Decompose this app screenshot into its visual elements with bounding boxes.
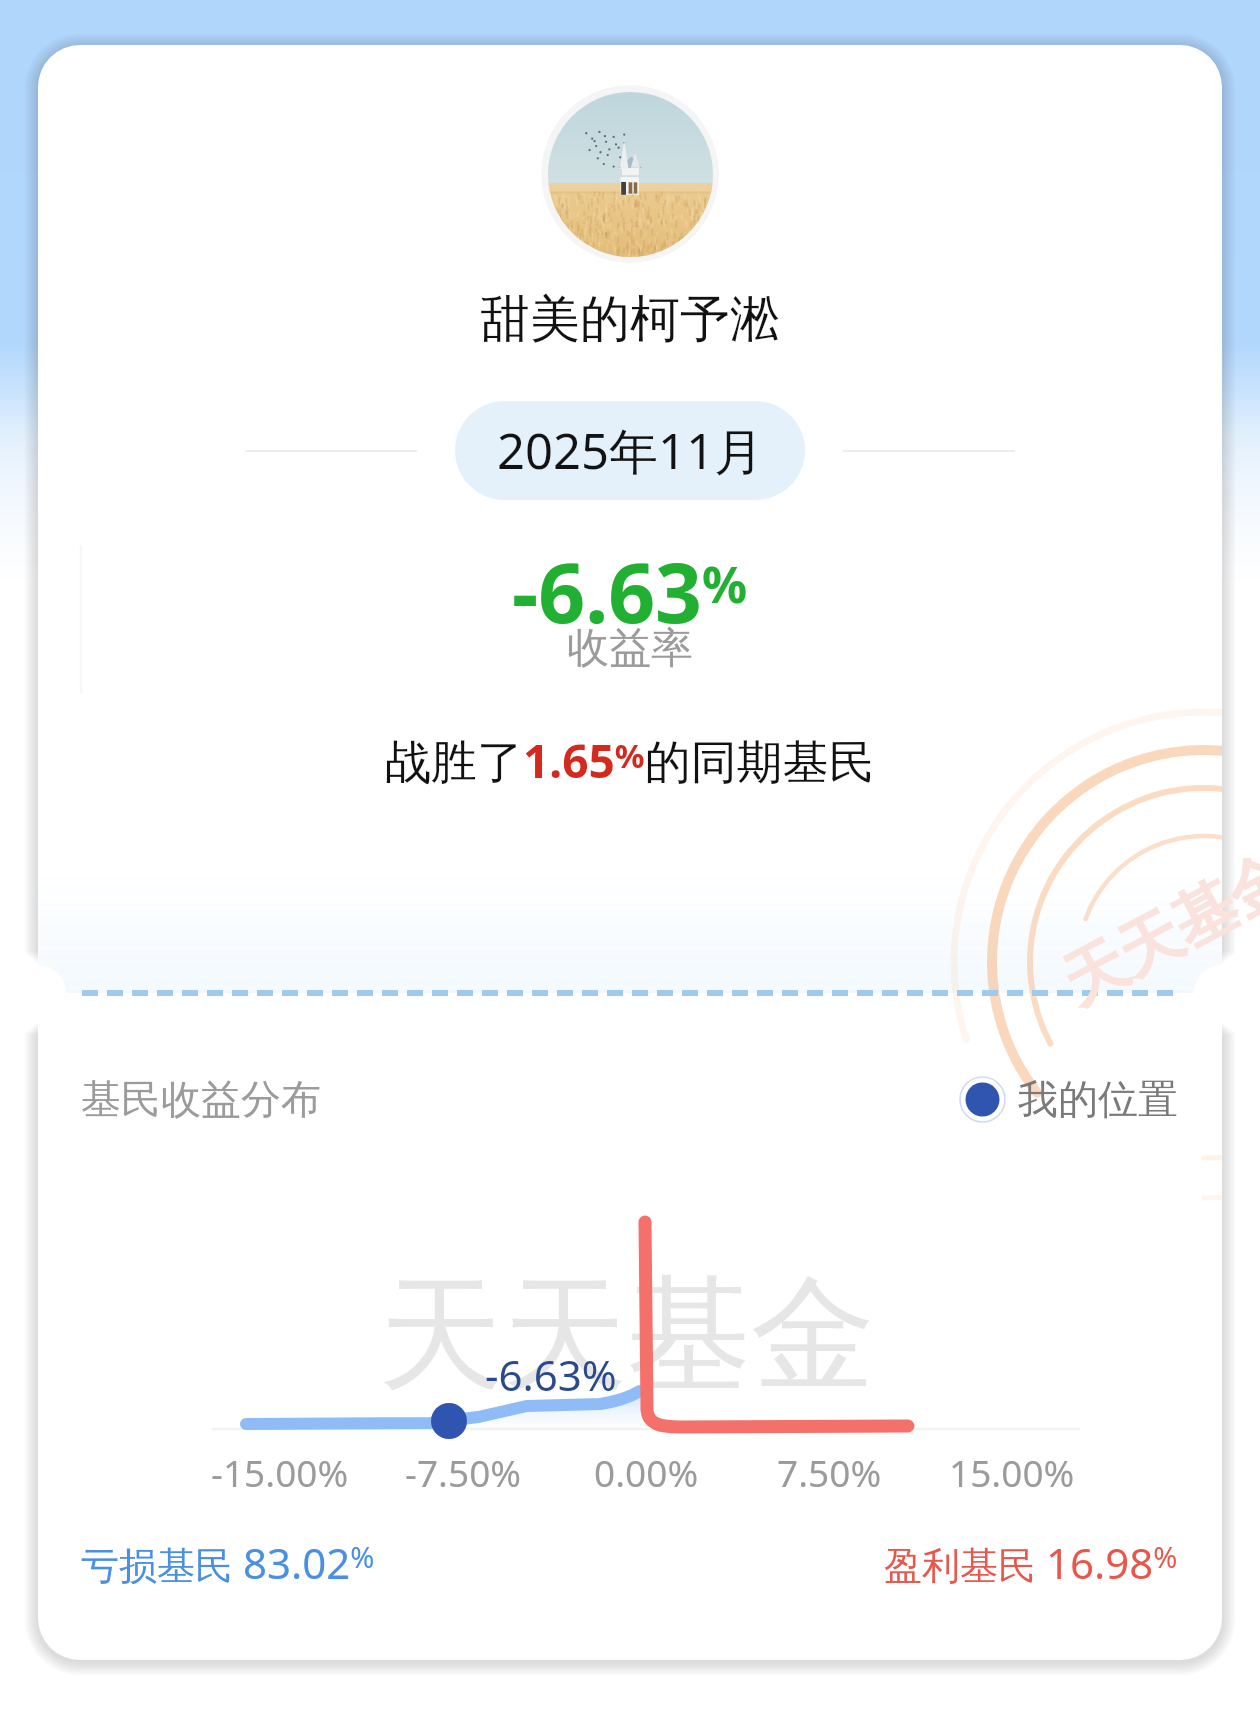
staticText: 2025年11月 — [497, 417, 764, 484]
staticText: -6.63% — [512, 535, 748, 647]
staticText: -7.50% — [405, 1447, 522, 1497]
staticText: 战胜了1.65%的同期基民 — [385, 729, 875, 792]
staticText: 0.00% — [594, 1447, 699, 1497]
button[interactable]: 甜美的柯予淞 — [480, 288, 780, 351]
staticText: 盈利基民 16.98% — [884, 1534, 1178, 1591]
staticText: 亏损基民 83.02% — [81, 1534, 375, 1591]
staticText: 天天基金 — [379, 1258, 875, 1414]
staticText: 7.50% — [777, 1447, 882, 1497]
button[interactable]: 我的位置 — [959, 1074, 1178, 1124]
staticText: -6.63% — [485, 1346, 617, 1403]
button[interactable]: 用户头像 — [541, 85, 719, 263]
staticText: 天天基金 — [1049, 836, 1260, 1022]
button[interactable]: 亏损基民 83.02% — [81, 1534, 375, 1591]
staticText: 15.00% — [949, 1447, 1075, 1497]
button[interactable]: -6.63% — [512, 535, 748, 647]
staticText: 收益率 — [567, 622, 693, 675]
button[interactable]: 盈利基民 16.98% — [884, 1534, 1178, 1591]
staticText: 甜美的柯予淞 — [480, 288, 780, 351]
button[interactable]: 2025年11月 — [455, 401, 805, 500]
staticText: 我的位置 — [1018, 1074, 1178, 1124]
staticText: -15.00% — [211, 1447, 349, 1497]
staticText: 基民收益分布 — [81, 1074, 321, 1124]
